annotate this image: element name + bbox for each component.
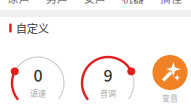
staticText: 机器	[122, 0, 144, 6]
staticText: 语速	[30, 87, 46, 99]
staticText: 搞怪	[160, 0, 182, 6]
button[interactable]: 0	[8, 53, 68, 112]
button[interactable]: 9	[78, 53, 138, 112]
button[interactable]: 原声	[0, 0, 38, 4]
button[interactable]: 女声	[76, 0, 114, 4]
staticText: 9	[103, 63, 112, 86]
staticText: 自定义	[16, 20, 49, 36]
button[interactable]: 机器	[114, 0, 152, 4]
staticText: 原声	[8, 0, 30, 6]
staticText: 0	[33, 63, 42, 86]
staticText: 音调	[100, 87, 116, 99]
button[interactable]: 变音	[150, 55, 190, 104]
staticText: 变音	[162, 92, 178, 104]
button[interactable]: 男声	[38, 0, 76, 4]
staticText: 男声	[46, 0, 68, 6]
staticText: 女声	[84, 0, 106, 6]
button[interactable]: 搞怪	[152, 0, 190, 4]
